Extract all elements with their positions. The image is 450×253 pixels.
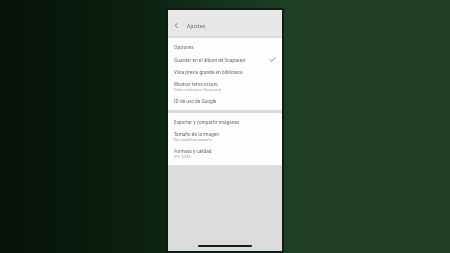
button[interactable]: Mostrar tema oscuro	[168, 78, 282, 95]
staticText: Exportar y compartir imágenes	[174, 119, 240, 125]
button[interactable]: Opciones	[168, 41, 282, 53]
button[interactable]: Exportar y compartir imágenes	[168, 116, 282, 128]
staticText: Formato y calidad	[174, 148, 212, 154]
button[interactable]: Formato y calidad	[168, 145, 282, 162]
button[interactable]: ID de uso de Google	[168, 95, 282, 107]
staticText: Ajustes	[187, 22, 206, 29]
button[interactable]: Vista previa grande en biblioteca	[168, 66, 282, 78]
staticText: Opciones	[174, 44, 194, 50]
staticText: ID de uso de Google	[174, 98, 217, 104]
staticText: Mostrar tema oscuro	[174, 81, 218, 87]
button[interactable]: Tamaño de la imagen	[168, 128, 282, 145]
staticText: Guardar en el álbum de Snapseed	[174, 57, 245, 63]
button[interactable]: Back	[170, 19, 183, 32]
staticText: Debe reiniciarse Snapseed	[174, 87, 222, 92]
staticText: Vista previa grande en biblioteca	[174, 69, 243, 75]
staticText: Tamaño de la imagen	[174, 131, 219, 137]
staticText: JPG 100%	[174, 154, 191, 159]
staticText: No modificar tamaño	[174, 137, 212, 142]
button[interactable]: Guardar en el álbum de Snapseed	[168, 53, 282, 66]
